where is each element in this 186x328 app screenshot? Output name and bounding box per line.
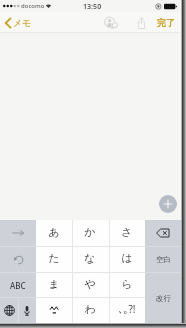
staticText: あ xyxy=(48,225,60,239)
button[interactable]: Share xyxy=(132,12,151,33)
staticText: な xyxy=(84,251,96,265)
button[interactable]: ま xyxy=(36,272,72,298)
button[interactable]: あ xyxy=(36,220,72,246)
button[interactable]: Add collaborator xyxy=(101,12,122,33)
button[interactable]: Switch keyboard xyxy=(0,297,18,323)
button[interactable]: わ xyxy=(72,297,108,323)
staticText: ､｡?! xyxy=(118,302,136,316)
button[interactable]: た xyxy=(36,246,72,272)
staticText: docomo xyxy=(21,2,45,10)
button[interactable]: 完了 xyxy=(153,12,179,33)
button[interactable]: Add attachment xyxy=(159,195,177,213)
staticText: ABC xyxy=(10,280,26,291)
button[interactable]: ABC xyxy=(0,272,36,298)
button[interactable]: 空白 xyxy=(145,246,181,272)
staticText: 完了 xyxy=(157,17,175,28)
staticText: た xyxy=(48,251,60,265)
staticText: は xyxy=(121,251,133,265)
staticText: か xyxy=(84,225,96,239)
button[interactable]: メモ xyxy=(0,14,38,31)
button[interactable]: Delete xyxy=(145,220,181,246)
staticText: ら xyxy=(121,277,133,291)
button[interactable]: ､｡?! xyxy=(109,297,145,323)
staticText: さ xyxy=(121,225,133,239)
button[interactable]: ら xyxy=(109,272,145,298)
button[interactable] xyxy=(36,297,72,323)
button[interactable]: 改行 xyxy=(145,272,181,324)
button[interactable]: さ xyxy=(109,220,145,246)
button[interactable]: は xyxy=(109,246,145,272)
staticText: メモ xyxy=(13,17,32,28)
staticText: 空白 xyxy=(156,255,171,264)
staticText: や xyxy=(84,277,96,291)
staticText: わ xyxy=(84,302,96,316)
staticText: 改行 xyxy=(156,294,171,303)
button[interactable]: Dictation xyxy=(18,297,36,323)
button[interactable]: Next candidate xyxy=(0,220,36,246)
button[interactable]: な xyxy=(72,246,108,272)
button[interactable]: か xyxy=(72,220,108,246)
staticText: ま xyxy=(48,277,60,291)
staticText: 13:50 xyxy=(83,1,102,11)
button[interactable]: や xyxy=(72,272,108,298)
button[interactable]: Undo xyxy=(0,246,36,272)
